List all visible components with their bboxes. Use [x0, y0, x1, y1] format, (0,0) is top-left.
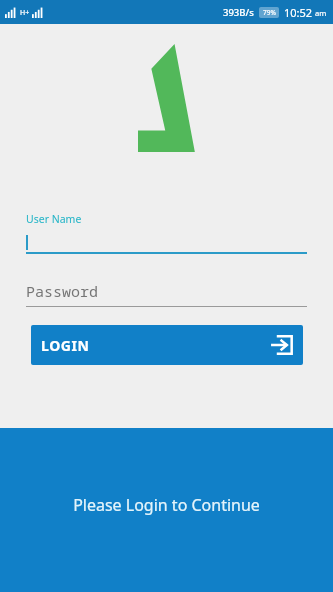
staticText: 393B/s	[223, 6, 254, 19]
other: Login	[271, 334, 293, 356]
staticText: Please Login to Continue	[73, 494, 260, 516]
staticText: 10:52	[284, 5, 313, 20]
staticText: User Name	[26, 212, 82, 226]
staticText: 79%	[263, 8, 276, 17]
button[interactable]: User Name	[26, 212, 307, 254]
button[interactable]: LOGIN	[31, 325, 303, 365]
staticText: LOGIN	[41, 336, 90, 355]
staticText: am	[315, 8, 327, 18]
button[interactable]: Password	[26, 280, 307, 307]
staticText: Password	[26, 281, 99, 301]
staticText: H+	[20, 8, 30, 18]
